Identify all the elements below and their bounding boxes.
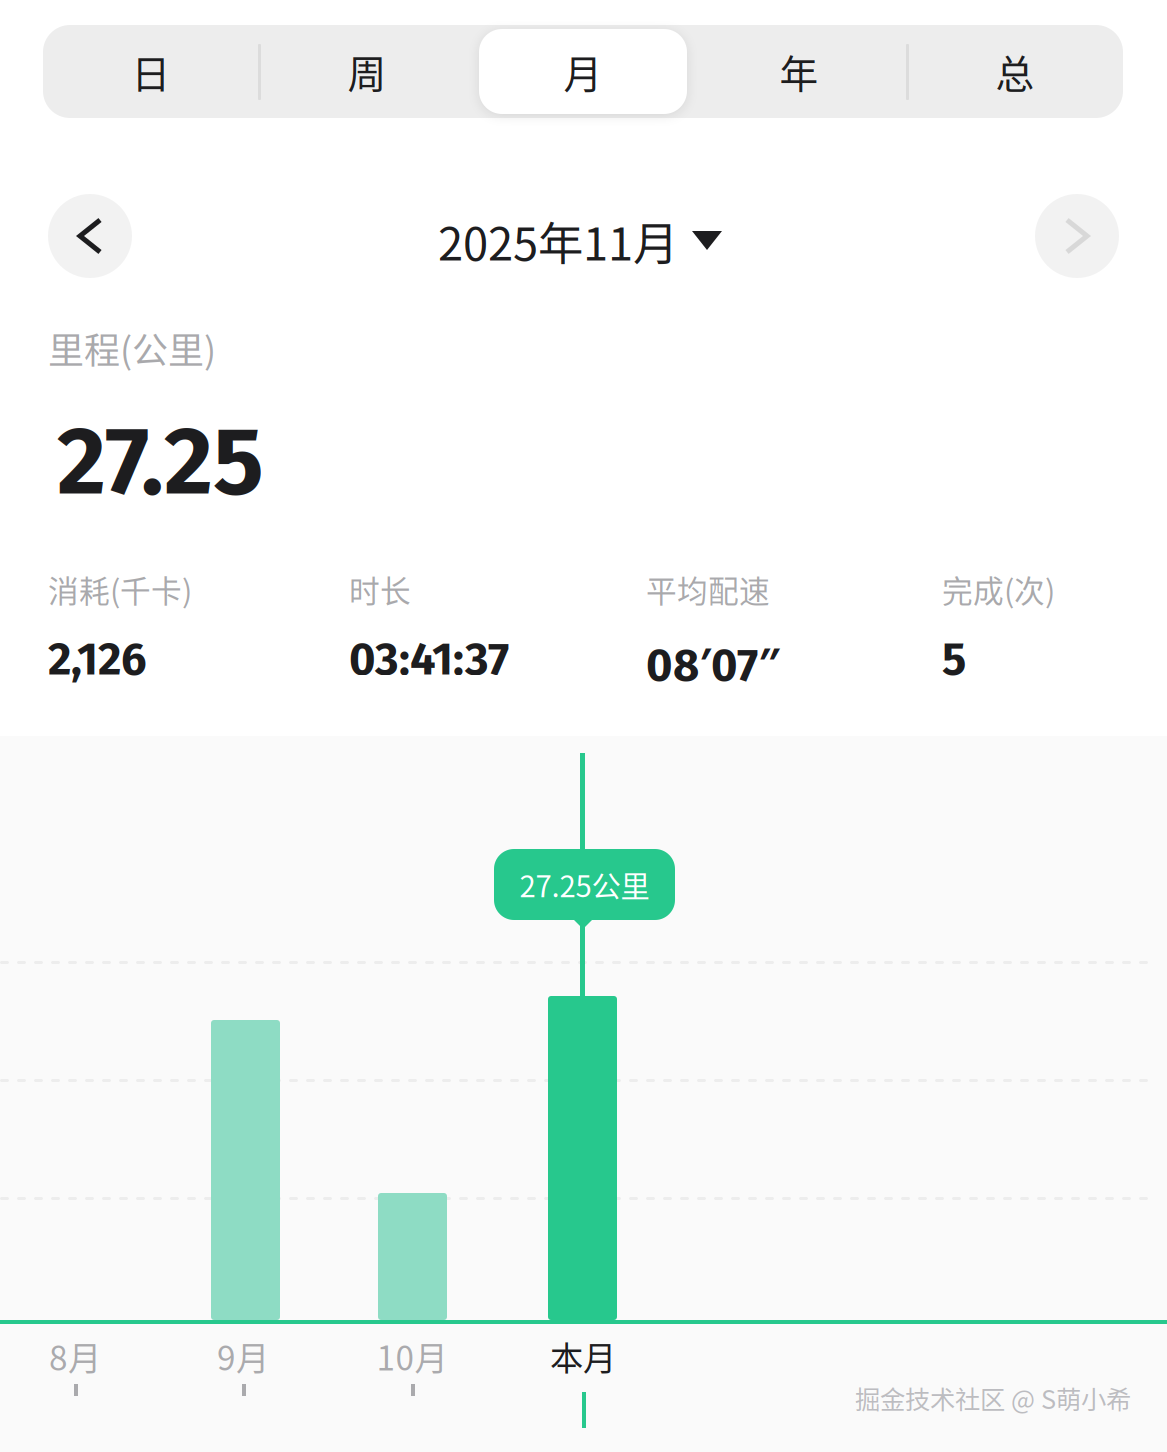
button[interactable]: 年 [691, 25, 907, 118]
staticText: 8月 [49, 1332, 101, 1380]
button[interactable]: 月 [475, 25, 691, 118]
staticText: 27.25公里 [519, 863, 649, 906]
staticText: 月 [563, 43, 602, 99]
button[interactable]: 日 [43, 25, 259, 118]
staticText: 08′07″ [646, 632, 780, 694]
staticText: 03:41:37 [349, 632, 509, 686]
staticText: 周 [347, 43, 386, 99]
staticText: 10月 [376, 1332, 447, 1380]
staticText: 9月 [217, 1332, 269, 1380]
staticText: 时长 [349, 567, 411, 611]
staticText: 完成(次) [942, 567, 1055, 611]
button[interactable]: 下一月 [1035, 194, 1119, 278]
staticText: 掘金技术社区 @ S萌小希 [855, 1380, 1131, 1416]
staticText: 本月 [550, 1332, 616, 1380]
staticText: 2025年11月 [438, 208, 678, 274]
staticText: 总 [995, 43, 1034, 99]
button[interactable]: 上一月 [48, 194, 132, 278]
staticText: 消耗(千卡) [48, 567, 192, 611]
staticText: 年 [779, 43, 818, 99]
staticText: 27.25 [57, 405, 264, 519]
staticText: 5 [942, 632, 966, 686]
button[interactable]: 周 [259, 25, 475, 118]
staticText: 里程(公里) [48, 322, 216, 374]
button[interactable]: 2025年11月 [438, 202, 738, 262]
staticText: 日 [131, 43, 170, 99]
staticText: 2,126 [48, 632, 147, 686]
staticText: 平均配速 [646, 567, 770, 611]
button[interactable]: 总 [907, 25, 1123, 118]
